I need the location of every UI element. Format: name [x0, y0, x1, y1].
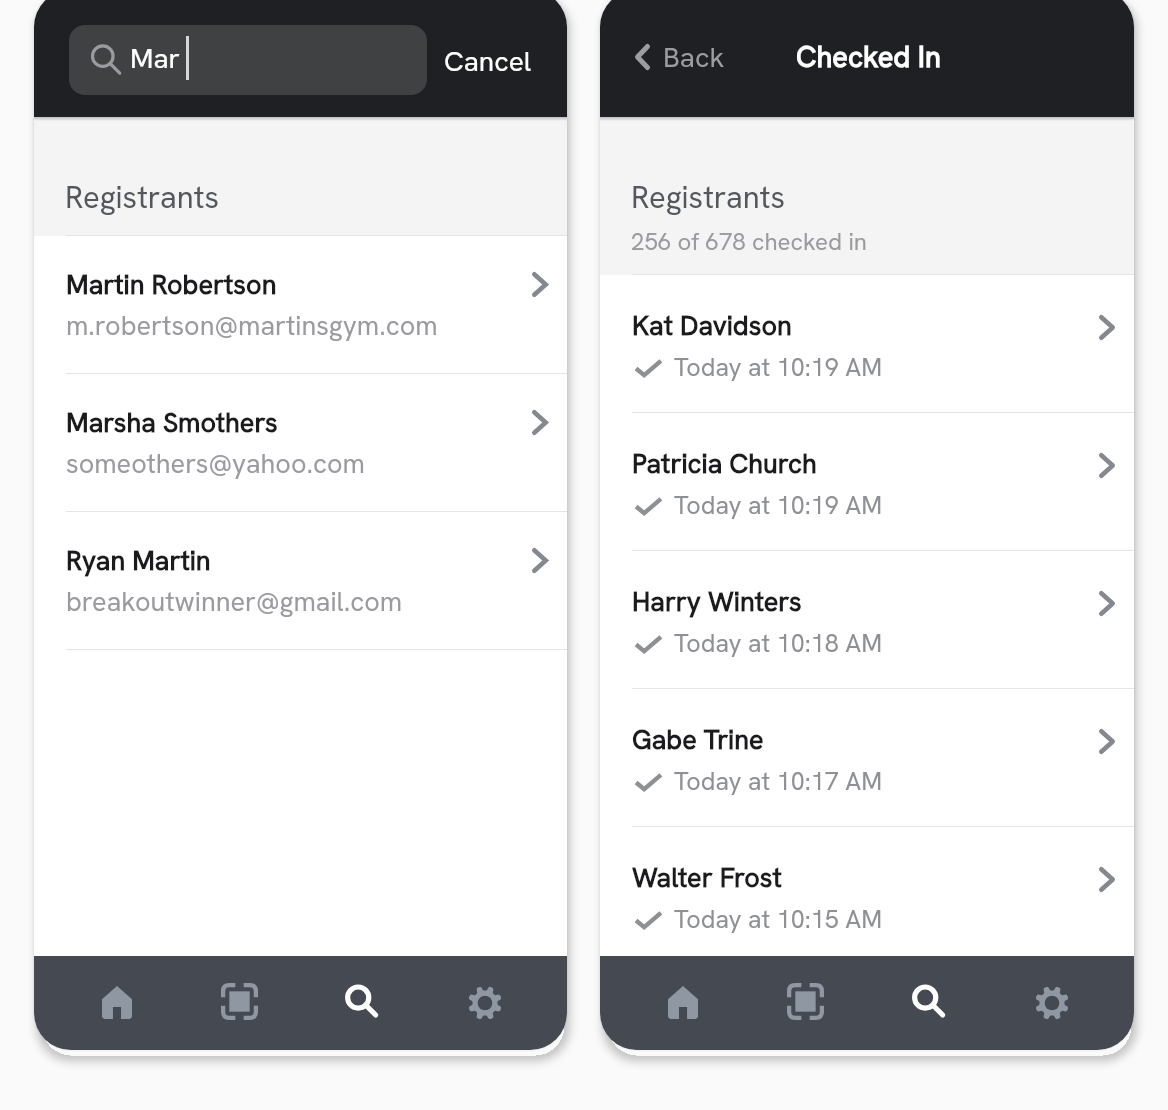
button[interactable]: Ryan Martin	[34, 512, 567, 650]
staticText: Checked In	[796, 38, 941, 76]
staticText: breakoutwinner@gmail.com	[66, 584, 403, 619]
button[interactable]: Search registrants	[69, 25, 427, 95]
staticText: Harry Winters	[632, 584, 802, 619]
button[interactable]: Settings	[444, 956, 525, 1050]
staticText: Today at 10:15 AM	[674, 903, 883, 936]
staticText: Kat Davidson	[632, 308, 792, 343]
staticText: Registrants	[631, 177, 786, 217]
staticText: Today at 10:18 AM	[674, 627, 883, 660]
staticText: Today at 10:19 AM	[674, 489, 883, 522]
staticText: m.robertson@martinsgym.com	[66, 308, 438, 343]
button[interactable]: Search	[888, 956, 969, 1050]
button[interactable]: Cancel	[432, 24, 544, 98]
button[interactable]: Scan	[199, 956, 280, 1050]
button[interactable]: Settings	[1011, 956, 1092, 1050]
button[interactable]: Home	[76, 956, 157, 1050]
button[interactable]: Martin Robertson	[34, 236, 567, 374]
button[interactable]: Marsha Smothers	[34, 374, 567, 512]
staticText: Today at 10:19 AM	[674, 351, 883, 384]
staticText: Martin Robertson	[66, 267, 277, 302]
staticText: Walter Frost	[632, 860, 782, 895]
staticText: Mar	[130, 40, 181, 76]
staticText: someothers@yahoo.com	[66, 446, 365, 481]
staticText: Marsha Smothers	[66, 405, 278, 440]
button[interactable]: Patricia Church	[600, 413, 1134, 551]
button[interactable]: Scan	[765, 956, 846, 1050]
staticText: Today at 10:17 AM	[674, 765, 883, 798]
staticText: Gabe Trine	[632, 722, 764, 757]
button[interactable]: Gabe Trine	[600, 689, 1134, 827]
button[interactable]: Back	[625, 29, 735, 85]
button[interactable]: Walter Frost	[600, 827, 1134, 965]
staticText: Registrants	[65, 177, 220, 217]
staticText: Patricia Church	[632, 446, 817, 481]
button[interactable]: Kat Davidson	[600, 275, 1134, 413]
button[interactable]: Harry Winters	[600, 551, 1134, 689]
staticText: 256 of 678 checked in	[631, 226, 867, 257]
staticText: Cancel	[444, 43, 532, 79]
button[interactable]: Home	[642, 956, 723, 1050]
staticText: Back	[663, 39, 725, 75]
staticText: Ryan Martin	[66, 543, 211, 578]
button[interactable]: Search	[321, 956, 402, 1050]
